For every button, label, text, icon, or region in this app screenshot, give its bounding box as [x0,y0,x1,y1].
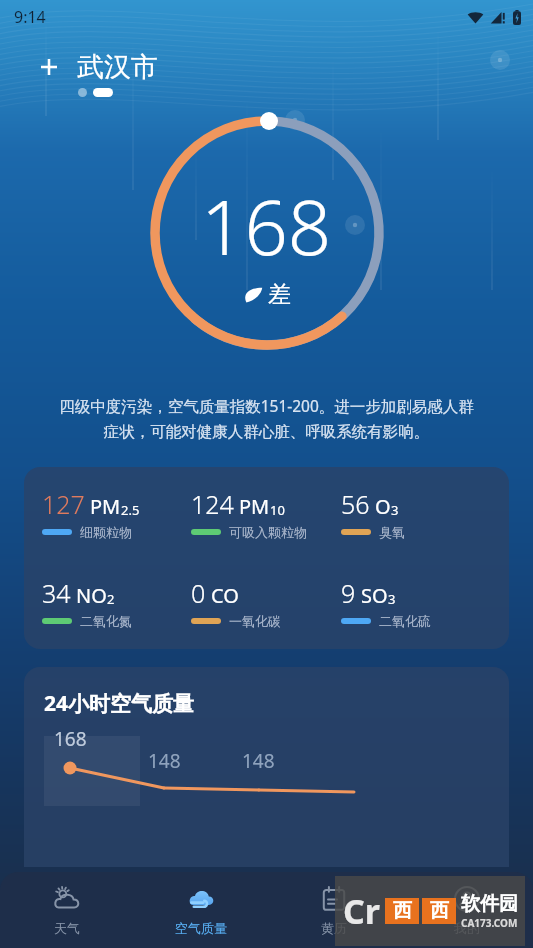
staticText: 一氧化碳 [229,613,281,629]
staticText: 0 [191,576,206,610]
staticText: 我的 [454,920,480,936]
staticText: 148 [242,748,275,774]
staticText: CA173.COM [461,916,518,930]
staticText: 3 [388,590,396,608]
staticText: 软件园 [461,892,518,916]
staticText: 148 [148,748,181,774]
button[interactable]: 黄历 [267,872,400,948]
staticText: 2 [107,590,115,608]
button[interactable]: 空气质量 [134,872,267,948]
staticText: 黄历 [321,920,347,936]
staticText: 可吸入颗粒物 [229,524,307,540]
staticText: 56 [341,487,370,521]
button[interactable]: 127 [24,467,509,649]
button[interactable]: 天气 [0,872,134,948]
staticText: 西 [430,899,449,923]
button[interactable]: 我的 [400,872,533,948]
staticText: 武汉市 [77,50,158,84]
staticText: 127 [42,487,85,521]
staticText: 9 [341,576,356,610]
staticText: 差 [268,280,291,309]
staticText: 10 [270,501,285,519]
staticText: 臭氧 [379,524,405,540]
staticText: 2.5 [121,501,140,519]
staticText: 细颗粒物 [80,524,132,540]
button[interactable]: 24小时空气质量 [24,667,509,867]
staticText: 空气质量 [175,920,227,936]
staticText: Cr [343,888,381,934]
staticText: 34 [42,576,71,610]
staticText: 9:14 [14,6,46,28]
button[interactable]: Add city [34,52,64,82]
staticText: 二氧化氮 [80,613,132,629]
staticText: O [375,493,391,520]
staticText: 24小时空气质量 [44,689,195,718]
staticText: 124 [191,487,234,521]
staticText: NO [76,582,107,609]
staticText: 3 [391,501,399,519]
staticText: 168 [54,726,87,752]
staticText: SO [361,582,388,609]
staticText: 天气 [54,920,80,936]
staticText: CO [211,582,239,609]
staticText: 西 [393,899,412,923]
staticText: PM [90,493,121,520]
staticText: 二氧化硫 [379,613,431,629]
staticText: 四级中度污染，空气质量指数151-200。进一步加剧易感人群症状，可能对健康人群… [52,395,481,441]
staticText: 168 [201,174,332,278]
staticText: PM [239,493,270,520]
